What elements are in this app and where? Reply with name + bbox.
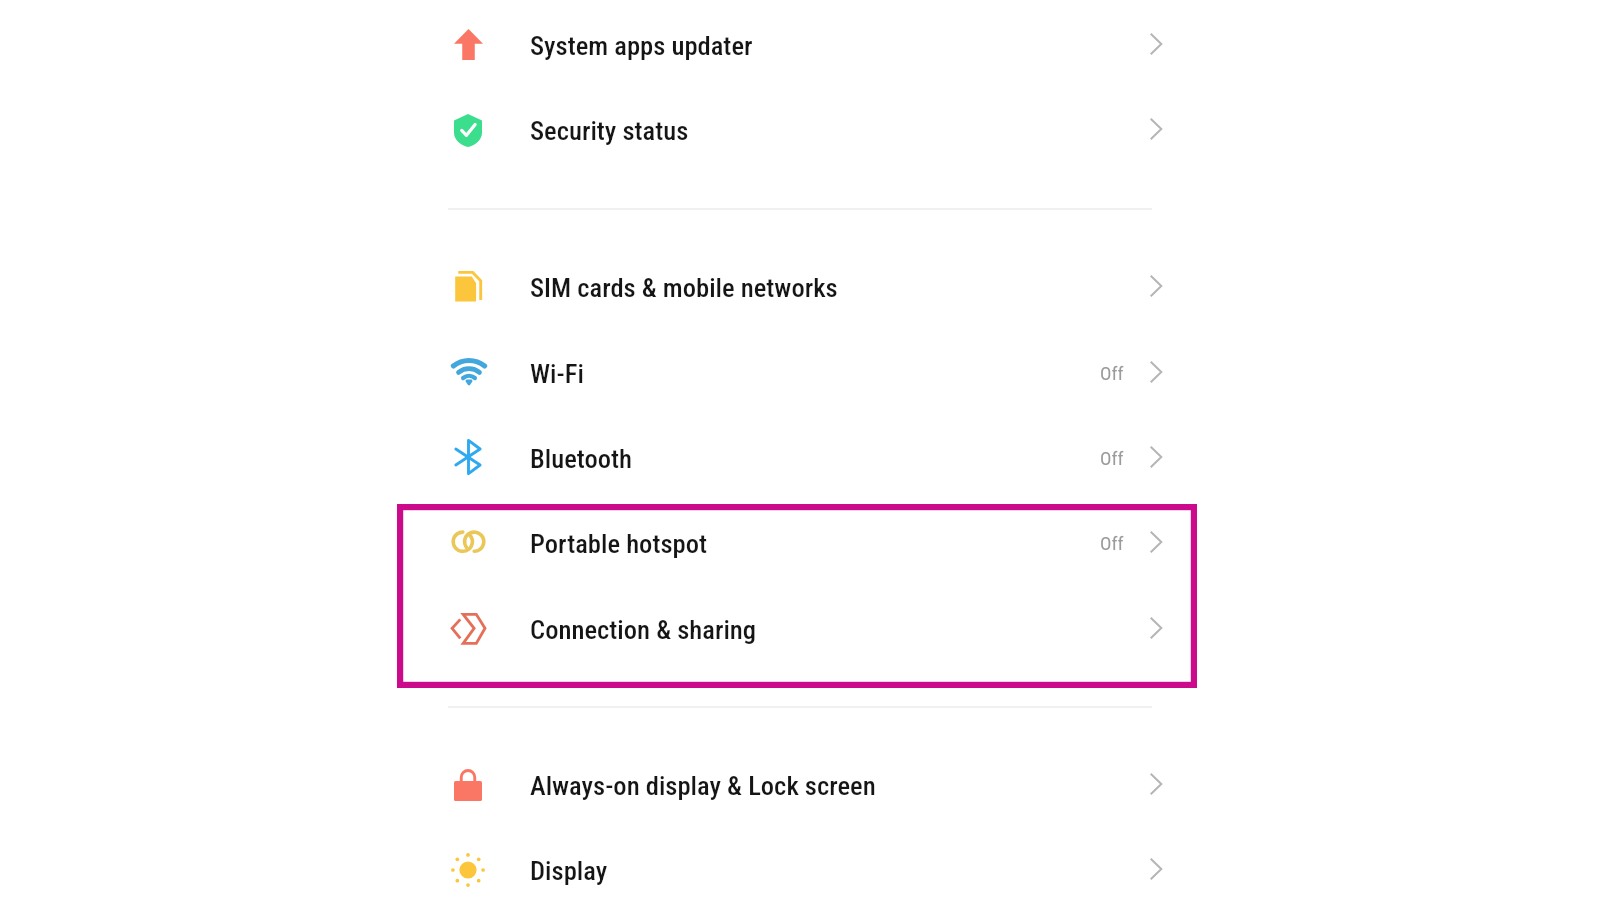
staticText: Display [530,855,608,886]
staticText: System apps updater [530,30,753,61]
staticText: Security status [530,115,689,146]
staticText: Always-on display & Lock screen [530,770,876,801]
staticText: Off [1100,362,1124,384]
button[interactable]: Security status [400,88,1190,173]
staticText: SIM cards & mobile networks [530,272,838,303]
button[interactable]: SIM cards and mobile networks [400,245,1190,330]
button[interactable]: Always-on display and Lock screen [400,743,1190,828]
staticText: Connection & sharing [530,614,757,645]
staticText: Bluetooth [530,443,633,474]
button[interactable]: Display [400,828,1190,900]
staticText: Off [1100,447,1124,469]
button[interactable]: Portable hotspot [400,501,1190,586]
button[interactable]: System apps updater [400,3,1190,88]
staticText: Wi-Fi [530,358,584,389]
button[interactable]: Bluetooth [400,416,1190,501]
button[interactable]: Connection and sharing [400,587,1190,672]
staticText: Portable hotspot [530,528,707,559]
staticText: Off [1100,532,1124,554]
button[interactable]: Wi-Fi [400,331,1190,416]
